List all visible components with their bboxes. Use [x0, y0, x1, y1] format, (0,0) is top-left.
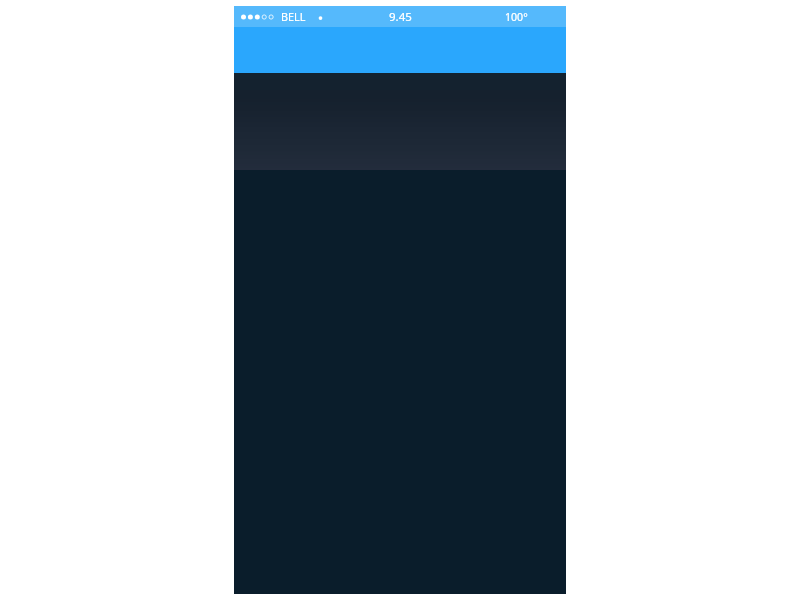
other: Signal strength [241, 13, 276, 21]
other: Wi-Fi [317, 13, 324, 20]
staticText: 100° [505, 10, 528, 24]
button[interactable]: Header panel [234, 73, 566, 170]
staticText: 9.45 [389, 9, 412, 25]
staticText: BELL [281, 9, 306, 24]
